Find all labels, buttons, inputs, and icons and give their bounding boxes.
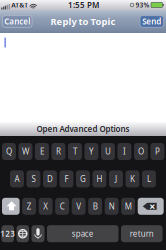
- button[interactable]: return: [121, 225, 162, 242]
- staticText: W: [22, 146, 29, 157]
- staticText: E: [40, 146, 44, 157]
- button[interactable]: Delete: [138, 198, 164, 215]
- staticText: D: [47, 174, 53, 184]
- staticText: G: [80, 174, 86, 184]
- staticText: return: [130, 228, 154, 239]
- button[interactable]: Cancel: [2, 16, 32, 27]
- button[interactable]: U: [101, 143, 115, 160]
- button[interactable]: O: [134, 143, 148, 160]
- button[interactable]: D: [43, 170, 57, 187]
- button[interactable]: V: [72, 198, 86, 215]
- button[interactable]: Q: [2, 143, 16, 160]
- staticText: A: [14, 174, 19, 184]
- staticText: Reply to Topic: [50, 15, 115, 28]
- staticText: 1:55 PM: [68, 0, 99, 10]
- button[interactable]: X: [39, 198, 53, 215]
- button[interactable]: L: [142, 170, 156, 187]
- button[interactable]: Send: [140, 16, 163, 27]
- staticText: T: [73, 146, 77, 157]
- button[interactable]: Z: [22, 198, 36, 215]
- staticText: Z: [27, 201, 32, 212]
- button[interactable]: S: [26, 170, 40, 187]
- staticText: Send: [142, 16, 161, 27]
- staticText: I: [123, 146, 126, 157]
- button[interactable]: T: [68, 143, 82, 160]
- staticText: M: [125, 201, 132, 212]
- staticText: N: [109, 201, 115, 212]
- staticText: O: [138, 146, 144, 157]
- button[interactable]: P: [150, 143, 164, 160]
- button[interactable]: C: [55, 198, 69, 215]
- staticText: P: [155, 146, 160, 157]
- button[interactable]: M: [121, 198, 135, 215]
- staticText: F: [64, 174, 68, 184]
- staticText: C: [60, 201, 65, 212]
- button[interactable]: E: [35, 143, 49, 160]
- button[interactable]: Y: [84, 143, 98, 160]
- staticText: Y: [89, 146, 94, 157]
- button[interactable]: space: [47, 225, 118, 242]
- staticText: R: [56, 146, 61, 157]
- button[interactable]: Shift: [2, 198, 20, 215]
- staticText: 123: [0, 228, 15, 239]
- staticText: space: [72, 228, 94, 239]
- button[interactable]: W: [18, 143, 32, 160]
- staticText: S: [31, 174, 35, 184]
- staticText: Open Advanced Options: [36, 124, 129, 134]
- staticText: U: [105, 146, 111, 157]
- button[interactable]: 123: [1, 225, 14, 242]
- staticText: K: [130, 174, 135, 184]
- staticText: H: [96, 174, 102, 184]
- staticText: Cancel: [4, 16, 30, 27]
- button[interactable]: J: [109, 170, 123, 187]
- button[interactable]: B: [88, 198, 102, 215]
- button[interactable]: Dictation: [31, 225, 44, 242]
- button[interactable]: Next keyboard: [16, 225, 29, 242]
- button[interactable]: N: [105, 198, 119, 215]
- button[interactable]: A: [10, 170, 24, 187]
- button[interactable]: Open Advanced Options: [0, 122, 166, 136]
- staticText: X: [43, 201, 48, 212]
- staticText: L: [147, 174, 151, 184]
- staticText: Q: [6, 146, 12, 157]
- button[interactable]: H: [92, 170, 106, 187]
- staticText: J: [115, 174, 117, 184]
- button[interactable]: F: [59, 170, 73, 187]
- button[interactable]: R: [51, 143, 65, 160]
- staticText: AT&T: [11, 1, 28, 9]
- staticText: 93%: [135, 1, 149, 9]
- staticText: ×: [149, 199, 155, 213]
- button[interactable]: K: [125, 170, 139, 187]
- button[interactable]: I: [117, 143, 131, 160]
- button[interactable]: G: [76, 170, 90, 187]
- staticText: B: [93, 201, 98, 212]
- staticText: V: [76, 201, 81, 212]
